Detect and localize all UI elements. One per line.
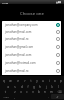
- staticText: ⇧: [4, 90, 7, 93]
- staticText: d: [21, 85, 23, 89]
- staticText: w: [9, 79, 12, 83]
- button[interactable]: jonathan@mail.ro: [2, 35, 61, 43]
- staticText: ,: [14, 95, 15, 99]
- button[interactable]: s: [11, 84, 18, 89]
- button[interactable]: ⌫: [54, 89, 64, 94]
- staticText: jonathan@gmail.com: [5, 45, 55, 49]
- button[interactable]: ✓: [51, 94, 64, 99]
- button[interactable]: ,: [11, 94, 17, 99]
- staticText: 12:30: [2, 1, 9, 4]
- staticText: j: [46, 85, 47, 89]
- button[interactable]: jonathan@company.com: [2, 21, 61, 28]
- other: Select account: [56, 53, 60, 57]
- button[interactable]: jonathan@hotmail.com: [2, 59, 61, 67]
- staticText: u: [42, 79, 44, 83]
- button[interactable]: e: [14, 78, 21, 84]
- button[interactable]: v: [30, 89, 36, 94]
- button[interactable]: f: [25, 84, 31, 89]
- button[interactable]: jonathan@mail.com: [2, 51, 61, 59]
- button[interactable]: .: [45, 94, 51, 99]
- staticText: .: [48, 95, 49, 99]
- staticText: v: [32, 90, 34, 94]
- button[interactable]: g: [31, 84, 37, 89]
- staticText: h: [39, 85, 41, 89]
- staticText: n: [44, 90, 46, 94]
- button[interactable]: h: [37, 84, 43, 89]
- other: Select account: [56, 23, 60, 27]
- button[interactable]: x: [18, 89, 24, 94]
- button[interactable]: z: [11, 89, 18, 94]
- button[interactable]: r: [21, 78, 28, 84]
- staticText: jonathan@hotmail.com: [5, 61, 55, 65]
- other: Select account: [56, 61, 60, 65]
- other: Select account: [56, 69, 60, 73]
- button[interactable]: p: [58, 78, 64, 84]
- button[interactable]: d: [18, 84, 25, 89]
- button[interactable]: w: [7, 78, 14, 84]
- staticText: q: [3, 79, 5, 83]
- staticText: l: [58, 85, 59, 89]
- staticText: s: [14, 85, 16, 89]
- staticText: a: [7, 85, 9, 89]
- staticText: ▲■▮: [56, 1, 62, 4]
- staticText: c: [26, 90, 28, 94]
- button[interactable]: y: [34, 78, 40, 84]
- staticText: jonathan@company.com: [5, 23, 55, 27]
- button[interactable]: k: [49, 84, 55, 89]
- button[interactable]: jonathan@mail.com: [2, 28, 61, 35]
- staticText: jonathan@mail.com: [5, 30, 55, 34]
- staticText: Choose one: [20, 10, 44, 16]
- button[interactable]: ⇧: [0, 89, 11, 94]
- staticText: g: [33, 85, 35, 89]
- staticText: t: [30, 79, 32, 83]
- staticText: jonathan@mail.com: [5, 53, 55, 57]
- button[interactable]: m: [48, 89, 54, 94]
- button[interactable]: q: [0, 78, 7, 84]
- button[interactable]: o: [52, 78, 58, 84]
- staticText: jonathan@mail.ro: [5, 37, 55, 41]
- staticText: x: [20, 90, 22, 94]
- button[interactable]: b: [36, 89, 42, 94]
- staticText: y: [36, 79, 38, 83]
- button[interactable]: u: [40, 78, 46, 84]
- staticText: ✓: [56, 95, 59, 98]
- button[interactable]: j: [43, 84, 49, 89]
- button[interactable]: ?123: [0, 94, 11, 99]
- staticText: b: [38, 90, 40, 94]
- button[interactable]: l: [55, 84, 61, 89]
- staticText: r: [24, 79, 26, 83]
- button[interactable]: i: [46, 78, 52, 84]
- staticText: o: [54, 79, 56, 83]
- other: Select account: [56, 37, 60, 41]
- button[interactable]: t: [28, 78, 34, 84]
- staticText: ?123: [3, 95, 9, 98]
- staticText: k: [51, 85, 53, 89]
- staticText: m: [50, 90, 53, 94]
- staticText: z: [14, 90, 16, 94]
- button[interactable]: a: [4, 84, 11, 89]
- staticText: jonathan@mail.ro: [5, 69, 55, 73]
- staticText: e: [17, 79, 19, 83]
- other: Select account: [56, 45, 60, 49]
- button[interactable]: jonathan@mail.ro: [2, 67, 61, 75]
- other: Select account: [56, 30, 60, 34]
- staticText: ⌫: [57, 90, 62, 93]
- button[interactable]: c: [24, 89, 30, 94]
- staticText: p: [60, 79, 62, 83]
- staticText: i: [49, 79, 50, 83]
- button[interactable]: n: [42, 89, 48, 94]
- button[interactable]: jonathan@gmail.com: [2, 43, 61, 51]
- staticText: f: [27, 85, 29, 89]
